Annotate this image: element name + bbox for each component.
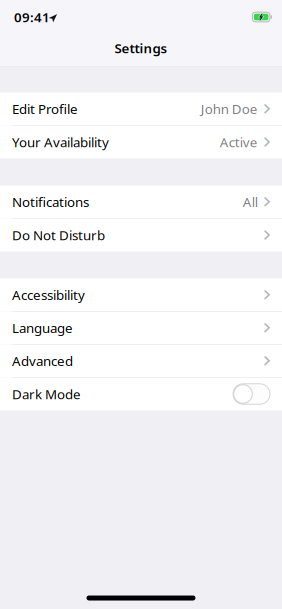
staticText: All [243,193,258,211]
button[interactable]: Edit Profile [0,92,282,125]
button[interactable]: Notifications [0,185,282,218]
button[interactable]: Your Availability [0,125,282,158]
button[interactable]: Language [0,311,282,344]
staticText: Your Availability [12,133,109,151]
staticText: Settings [114,39,167,57]
staticText: John Doe [201,100,258,118]
staticText: Edit Profile [12,100,78,118]
button[interactable]: Do Not Disturb [0,218,282,251]
button[interactable]: Dark Mode [0,377,282,410]
staticText: Dark Mode [12,385,81,403]
staticText: Notifications [12,193,89,211]
staticText: Accessibility [12,286,85,304]
staticText: Language [12,319,73,337]
button[interactable]: Advanced [0,344,282,377]
staticText: Advanced [12,352,73,370]
staticText: Do Not Disturb [12,226,105,244]
staticText: 09:41 [14,8,50,26]
staticText: Active [220,133,258,151]
button[interactable]: Accessibility [0,278,282,311]
